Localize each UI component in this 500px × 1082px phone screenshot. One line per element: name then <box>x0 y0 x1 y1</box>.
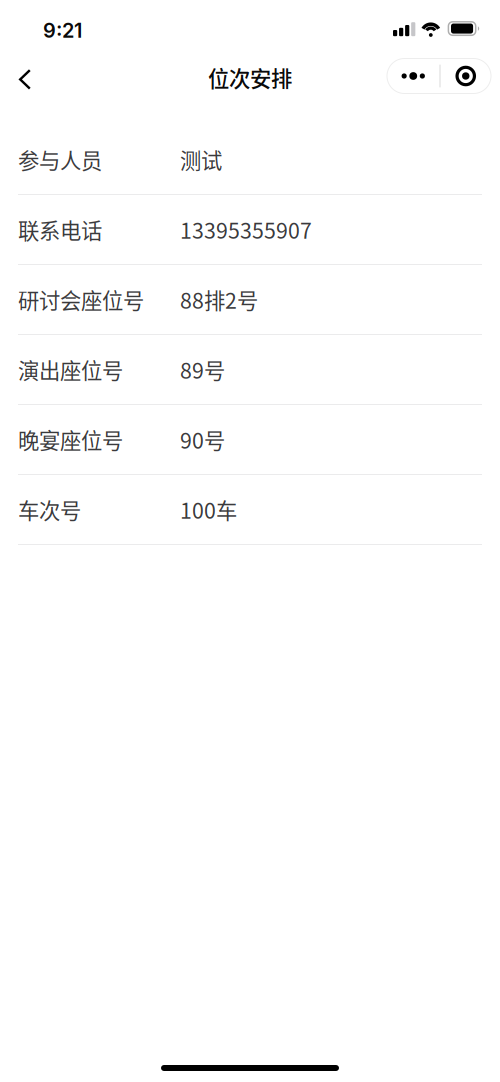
staticText: 90号 <box>180 424 225 455</box>
staticText: 联系电话 <box>18 214 102 245</box>
staticText: 13395355907 <box>180 214 312 245</box>
staticText: 车次号 <box>18 494 81 525</box>
staticText: 演出座位号 <box>18 354 123 385</box>
staticText: 9:21 <box>43 18 82 42</box>
staticText: 88排2号 <box>180 284 258 315</box>
button[interactable]: Back <box>5 56 45 96</box>
staticText: 晚宴座位号 <box>18 424 123 455</box>
staticText: 参与人员 <box>18 144 102 175</box>
staticText: 100车 <box>180 494 237 525</box>
staticText: 位次安排 <box>208 62 292 93</box>
staticText: 测试 <box>180 144 222 175</box>
button[interactable]: More options <box>387 58 491 93</box>
staticText: 研讨会座位号 <box>18 284 144 315</box>
staticText: 89号 <box>180 354 225 385</box>
